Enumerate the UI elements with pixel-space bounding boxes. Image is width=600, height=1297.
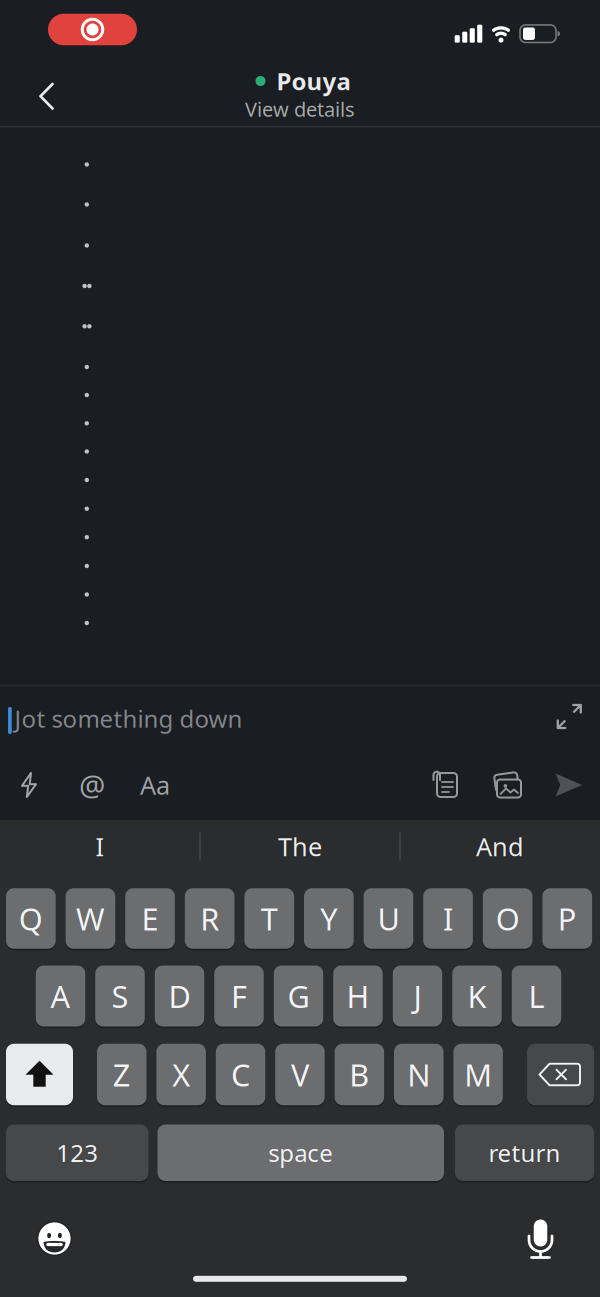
button[interactable]: Attach file [423, 762, 467, 806]
button[interactable]: Send [546, 763, 590, 807]
staticText: N [407, 1054, 430, 1095]
button[interactable]: C [216, 1043, 265, 1106]
staticText: M [464, 1054, 492, 1095]
staticText: U [377, 898, 399, 939]
staticText: P [558, 898, 577, 939]
button[interactable]: S [95, 964, 145, 1027]
staticText: B [349, 1054, 369, 1095]
staticText: And [476, 830, 524, 863]
button[interactable]: Expand message input [549, 696, 589, 736]
button[interactable]: Shift [6, 1043, 73, 1106]
staticText: O [496, 898, 520, 939]
staticText: T [261, 898, 278, 939]
button[interactable]: O [483, 887, 532, 950]
staticText: Y [320, 898, 337, 939]
staticText: The [278, 830, 322, 863]
button[interactable]: Y [304, 887, 354, 950]
staticText: C [231, 1054, 250, 1095]
staticText: W [76, 898, 105, 939]
button[interactable]: B [335, 1043, 384, 1106]
button[interactable]: Pouya. View details [180, 62, 420, 124]
staticText: Pouya [276, 65, 350, 97]
button[interactable]: I [423, 887, 473, 950]
button[interactable]: A [36, 964, 85, 1027]
button[interactable]: R [185, 887, 234, 950]
button[interactable]: Emoji [29, 1213, 79, 1263]
staticText: R [200, 898, 219, 939]
button[interactable]: Z [97, 1043, 146, 1106]
button[interactable]: E [125, 887, 175, 950]
staticText: I [443, 898, 453, 939]
staticText: K [467, 976, 486, 1016]
button[interactable]: D [155, 964, 204, 1027]
button[interactable]: N [394, 1043, 443, 1106]
button[interactable]: X [156, 1043, 206, 1106]
staticText: A [50, 976, 70, 1016]
button[interactable]: I [5, 824, 195, 868]
staticText: Jot something down [14, 703, 242, 734]
button[interactable]: return [455, 1123, 594, 1182]
button[interactable]: 123 [6, 1123, 148, 1182]
button[interactable]: Photos [485, 763, 529, 807]
staticText: Aa [140, 768, 170, 802]
staticText: X [172, 1054, 190, 1095]
button[interactable]: The [205, 824, 395, 868]
staticText: Q [19, 898, 43, 939]
staticText: F [231, 976, 247, 1016]
button[interactable]: J [393, 964, 442, 1027]
button[interactable]: U [364, 887, 413, 950]
staticText: S [111, 976, 128, 1016]
staticText: Z [113, 1054, 131, 1095]
button[interactable]: space [157, 1123, 444, 1182]
staticText: space [268, 1137, 333, 1169]
button[interactable]: Workflows [6, 763, 50, 807]
button[interactable]: Dictation [515, 1213, 565, 1263]
button[interactable]: Delete [527, 1043, 594, 1106]
staticText: J [413, 976, 421, 1016]
button[interactable]: M [453, 1043, 503, 1106]
staticText: E [142, 898, 159, 939]
button[interactable]: K [452, 964, 502, 1027]
button[interactable]: T [244, 887, 294, 950]
button[interactable]: H [333, 964, 383, 1027]
staticText: View details [245, 96, 355, 122]
staticText: @ [79, 765, 105, 804]
staticText: H [346, 976, 369, 1016]
staticText: L [528, 976, 544, 1016]
button[interactable]: Stop screen recording [48, 14, 137, 45]
button[interactable]: V [275, 1043, 325, 1106]
button[interactable]: And [405, 824, 595, 868]
button[interactable]: Text formatting [131, 763, 179, 807]
button[interactable]: Back [23, 77, 69, 115]
staticText: I [95, 830, 104, 863]
staticText: D [168, 976, 190, 1016]
staticText: return [488, 1137, 560, 1169]
button[interactable]: P [542, 887, 592, 950]
button[interactable]: L [512, 964, 561, 1027]
staticText: G [287, 976, 309, 1016]
button[interactable]: Mention someone [70, 763, 114, 807]
button[interactable]: Q [6, 887, 56, 950]
button[interactable]: F [214, 964, 264, 1027]
button[interactable]: G [274, 964, 323, 1027]
staticText: V [291, 1054, 309, 1095]
button[interactable]: W [66, 887, 115, 950]
staticText: 123 [56, 1137, 98, 1169]
